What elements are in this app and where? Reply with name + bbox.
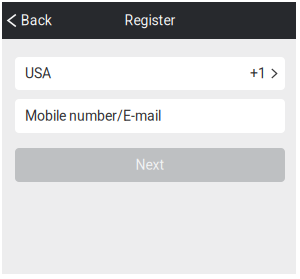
staticText: USA xyxy=(25,65,51,82)
staticText: Next xyxy=(135,157,164,173)
button[interactable]: Next xyxy=(15,148,285,182)
button[interactable]: Back xyxy=(0,2,61,39)
staticText: Mobile number/E-mail xyxy=(25,108,161,124)
button[interactable]: USA xyxy=(15,57,285,90)
staticText: Back xyxy=(21,12,52,29)
staticText: +1 xyxy=(250,65,266,82)
staticText: Register xyxy=(124,12,175,29)
